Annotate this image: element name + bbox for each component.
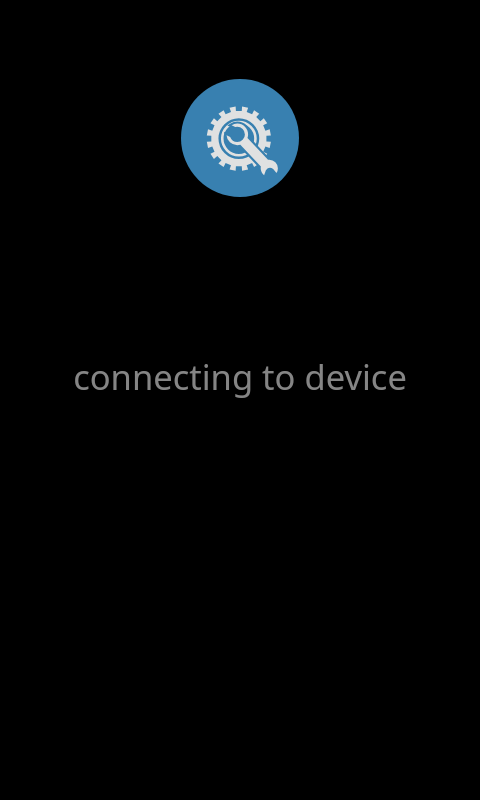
button[interactable]: Application logo	[181, 79, 299, 197]
staticText: connecting to device	[0, 353, 480, 400]
